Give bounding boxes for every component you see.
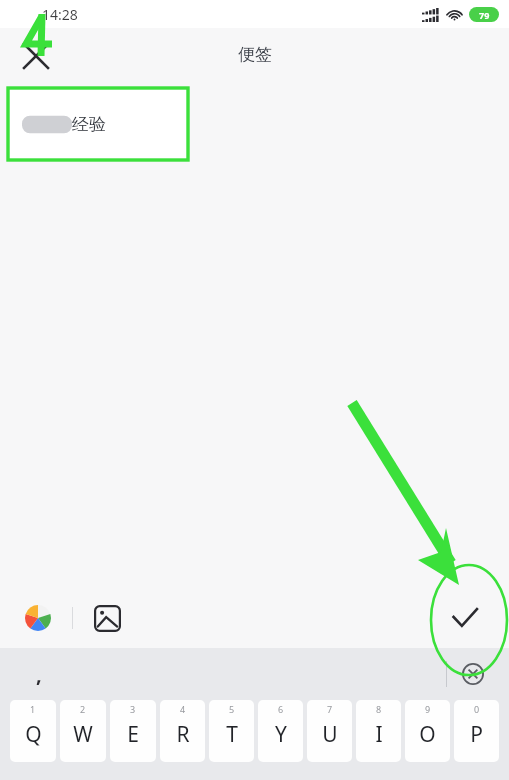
button[interactable]: Insert image [87,598,127,638]
staticText: 3 [130,703,136,715]
button[interactable]: Done [439,592,491,644]
staticText: 便签 [238,44,272,65]
button[interactable]: Delete [455,656,491,692]
staticText: E [127,720,139,749]
staticText: 经验 [72,114,106,135]
staticText: 0 [474,703,480,715]
button[interactable]: 1 [10,700,56,762]
staticText: T [226,720,238,749]
staticText: 5 [229,703,235,715]
staticText: 4 [180,703,186,715]
button[interactable]: 3 [110,700,156,762]
button[interactable]: Close [18,38,54,74]
button[interactable]: 6 [258,700,303,762]
staticText: 6 [278,703,284,715]
button[interactable]: 9 [405,700,450,762]
staticText: 14:28 [42,5,78,24]
staticText: 8 [376,703,382,715]
staticText: U [322,720,338,749]
button[interactable]: 2 [60,700,106,762]
button[interactable]: 7 [307,700,352,762]
staticText: , [36,661,42,688]
staticText: Y [275,720,287,749]
button[interactable]: 0 [454,700,499,762]
button[interactable]: 8 [356,700,401,762]
staticText: 1 [30,703,36,715]
button[interactable]: 经验 [8,88,188,160]
staticText: P [470,720,483,749]
staticText: 7 [327,703,333,715]
staticText: I [375,720,383,749]
staticText: Q [25,720,42,749]
staticText: R [176,720,190,749]
button[interactable]: 5 [209,700,254,762]
staticText: 79 [479,9,490,21]
staticText: 2 [80,703,86,715]
staticText: O [419,720,436,749]
staticText: 9 [425,703,431,715]
button[interactable]: 4 [160,700,205,762]
button[interactable]: Color [18,598,58,638]
staticText: W [73,720,93,749]
